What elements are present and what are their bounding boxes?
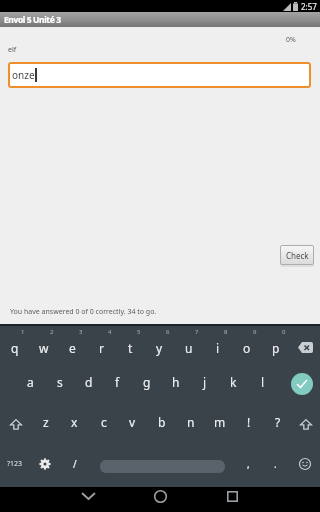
staticText: d <box>85 374 93 390</box>
staticText: x <box>71 414 78 430</box>
staticText: l <box>261 374 265 390</box>
button[interactable]: v <box>118 405 147 445</box>
staticText: s <box>57 374 63 390</box>
button[interactable]: / <box>60 445 90 487</box>
staticText: w <box>39 340 49 356</box>
staticText: r <box>99 340 104 356</box>
staticText: 2:57 <box>301 1 317 12</box>
staticText: t <box>128 340 133 356</box>
staticText: 7 <box>195 328 199 336</box>
button[interactable]: h <box>161 365 190 405</box>
button[interactable]: w <box>29 326 58 365</box>
staticText: 0% <box>286 35 296 45</box>
button[interactable]: y <box>145 326 174 365</box>
staticText: h <box>172 374 180 390</box>
staticText: z <box>43 414 49 430</box>
button[interactable]: k <box>219 365 248 405</box>
button[interactable] <box>290 326 320 365</box>
button[interactable]: x <box>60 405 89 445</box>
staticText: j <box>203 374 207 390</box>
button[interactable]: , <box>235 445 262 487</box>
staticText: i <box>216 340 220 356</box>
staticText: c <box>101 414 107 430</box>
button[interactable]: n <box>176 405 205 445</box>
button[interactable]: z <box>31 405 60 445</box>
button[interactable] <box>292 405 320 445</box>
staticText: y <box>156 340 163 356</box>
staticText: 1 <box>21 328 25 336</box>
button[interactable]: r <box>87 326 116 365</box>
button[interactable]: p <box>261 326 290 365</box>
staticText: 9 <box>253 328 257 336</box>
staticText: 2 <box>50 328 54 336</box>
staticText: ! <box>247 414 251 430</box>
staticText: o <box>243 340 251 356</box>
staticText: k <box>230 374 237 390</box>
button[interactable] <box>90 445 235 487</box>
button[interactable]: b <box>147 405 176 445</box>
button[interactable]: l <box>248 365 277 405</box>
button[interactable]: o <box>232 326 261 365</box>
button[interactable]: u <box>174 326 203 365</box>
staticText: p <box>272 340 280 356</box>
button[interactable]: a <box>16 365 45 405</box>
staticText: , <box>247 457 250 471</box>
staticText: m <box>214 414 226 430</box>
staticText: You have answered 0 of 0 correctly. 34 t… <box>10 307 157 317</box>
staticText: elf <box>8 45 17 55</box>
staticText: Envol 5 Unité 3 <box>4 14 61 26</box>
staticText: n <box>187 414 195 430</box>
button[interactable]: onze <box>8 62 311 88</box>
button[interactable] <box>289 445 320 487</box>
staticText: a <box>27 374 34 390</box>
staticText: 8 <box>224 328 228 336</box>
button[interactable] <box>220 484 244 509</box>
staticText: Check <box>286 250 309 261</box>
staticText: g <box>143 374 151 390</box>
button[interactable] <box>76 484 100 509</box>
staticText: 3 <box>79 328 83 336</box>
button[interactable]: g <box>132 365 161 405</box>
staticText: . <box>274 457 277 471</box>
staticText: ?123 <box>7 459 23 469</box>
button[interactable]: . <box>262 445 289 487</box>
staticText: e <box>69 340 76 356</box>
button[interactable] <box>277 365 320 405</box>
button[interactable]: c <box>89 405 118 445</box>
button[interactable]: f <box>103 365 132 405</box>
staticText: 0 <box>282 328 286 336</box>
staticText: 6 <box>166 328 170 336</box>
button[interactable]: s <box>45 365 74 405</box>
button[interactable]: j <box>190 365 219 405</box>
staticText: b <box>158 414 166 430</box>
button[interactable] <box>0 405 31 445</box>
button[interactable]: ?123 <box>0 445 30 487</box>
button[interactable]: ! <box>234 405 263 445</box>
button[interactable]: e <box>58 326 87 365</box>
button[interactable]: ? <box>263 405 292 445</box>
staticText: v <box>129 414 136 430</box>
staticText: q <box>11 340 19 356</box>
staticText: 5 <box>137 328 141 336</box>
staticText: f <box>115 374 120 390</box>
staticText: onze <box>12 68 35 82</box>
staticText: / <box>73 457 77 471</box>
button[interactable]: d <box>74 365 103 405</box>
staticText: u <box>185 340 193 356</box>
button[interactable]: i <box>203 326 232 365</box>
button[interactable] <box>148 484 172 509</box>
button[interactable]: m <box>205 405 234 445</box>
staticText: 4 <box>108 328 112 336</box>
button[interactable]: q <box>0 326 29 365</box>
staticText: ? <box>275 414 281 430</box>
button[interactable] <box>30 445 60 487</box>
button[interactable]: t <box>116 326 145 365</box>
button[interactable]: Check <box>280 245 314 265</box>
